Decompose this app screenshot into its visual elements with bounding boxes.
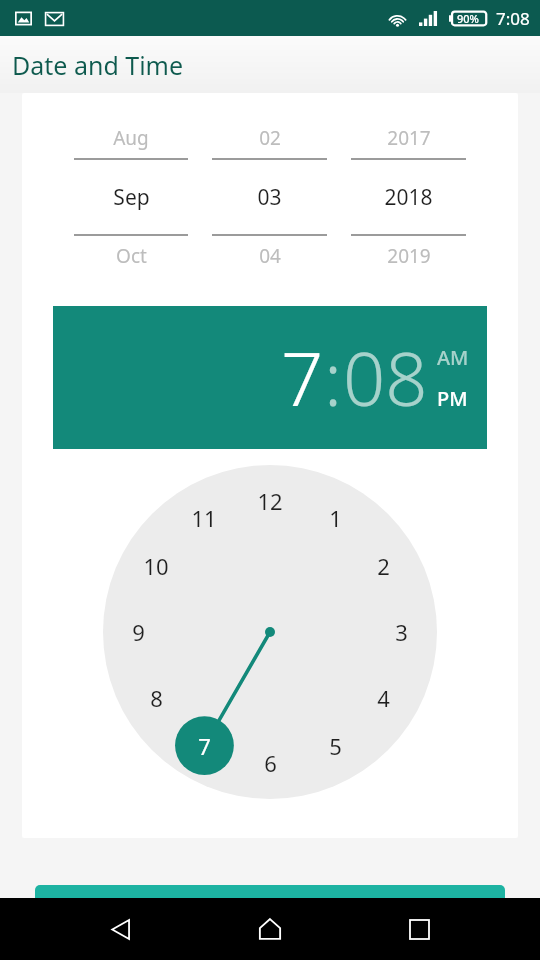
staticText: PM	[437, 385, 468, 412]
staticText: 7:08	[496, 7, 530, 30]
button[interactable]: 2017	[351, 118, 466, 276]
staticText: Aug	[113, 125, 149, 151]
button[interactable]: Back	[93, 901, 149, 957]
staticText: 4	[377, 683, 390, 713]
staticText: 03	[257, 183, 282, 212]
staticText: 8	[150, 683, 163, 713]
staticText: :	[324, 327, 343, 428]
staticText: 1	[329, 503, 342, 533]
staticText: 08	[343, 327, 428, 428]
staticText: 11	[191, 503, 217, 533]
staticText: 2	[377, 551, 390, 581]
staticText: 02	[259, 125, 281, 151]
button[interactable]: Recent apps	[391, 901, 447, 957]
staticText: 6	[264, 748, 277, 778]
button[interactable]: 02	[212, 118, 327, 276]
button[interactable]: Aug	[74, 118, 188, 276]
staticText: 2018	[384, 183, 433, 212]
button[interactable]: PM	[437, 385, 468, 412]
button[interactable]: 7	[281, 327, 324, 428]
staticText: 7	[281, 327, 324, 428]
button[interactable]: Clock, 7 selected	[22, 465, 518, 810]
button[interactable]: Home	[242, 901, 298, 957]
staticText: 9	[132, 617, 145, 647]
button[interactable]: 08	[343, 327, 428, 428]
button[interactable]	[35, 885, 505, 898]
staticText: 90%	[457, 11, 479, 26]
staticText: 2019	[387, 243, 431, 269]
staticText: Date and Time	[12, 48, 184, 82]
staticText: Oct	[116, 243, 147, 269]
staticText: AM	[437, 344, 469, 371]
staticText: 04	[259, 243, 281, 269]
staticText: 10	[143, 551, 169, 581]
staticText: 7	[198, 731, 211, 761]
staticText: 5	[329, 731, 342, 761]
staticText: 3	[395, 617, 408, 647]
staticText: 12	[257, 486, 283, 516]
staticText: 2017	[387, 125, 431, 151]
staticText: Sep	[113, 183, 150, 212]
button[interactable]: AM	[437, 344, 469, 371]
